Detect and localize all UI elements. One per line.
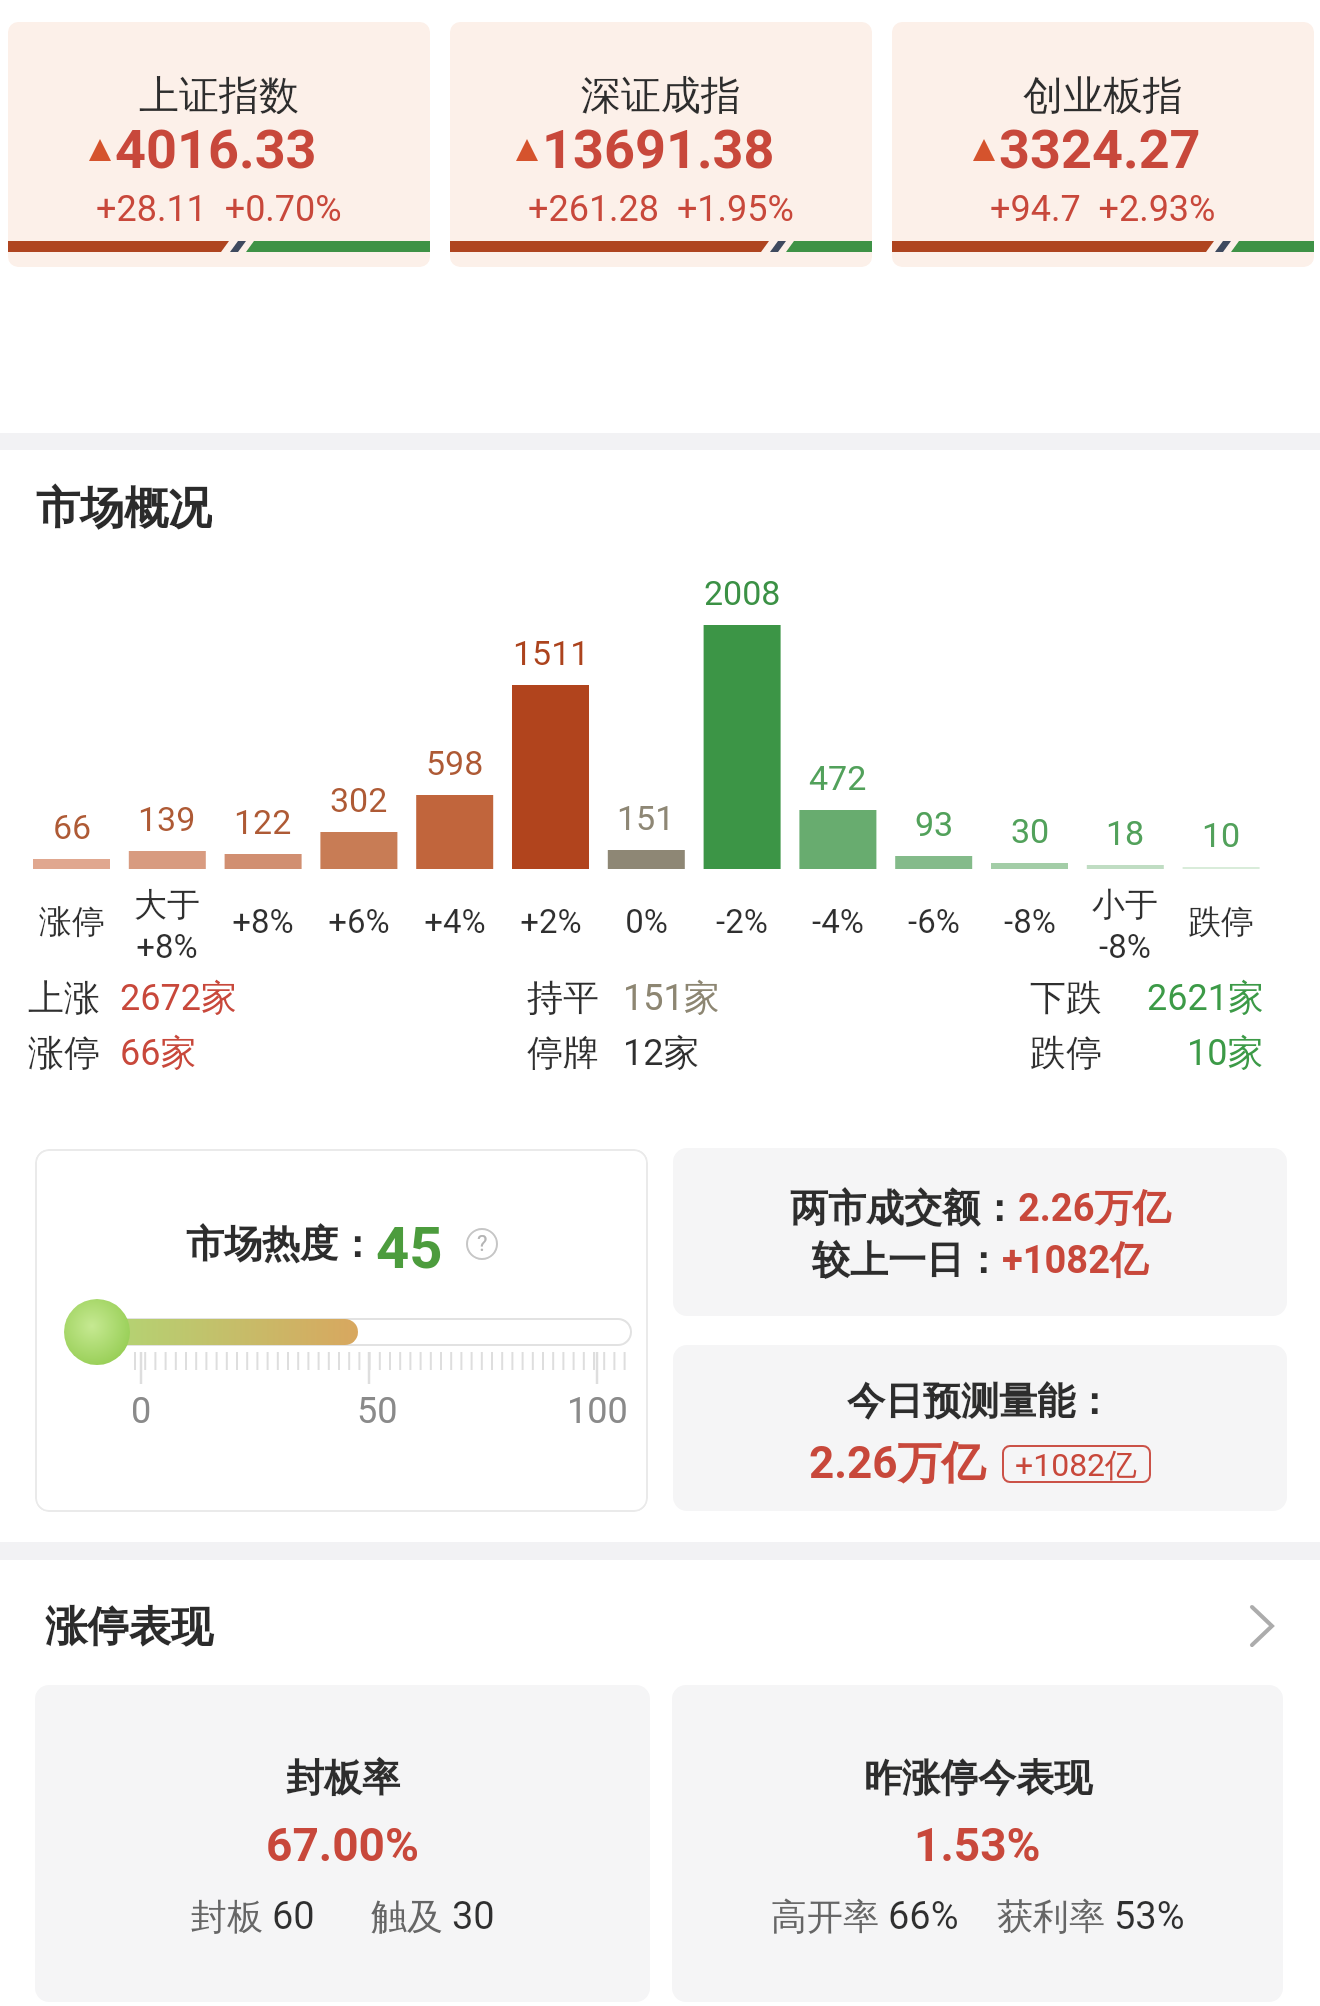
staticText: 12家: [623, 1030, 700, 1070]
staticText: 93: [915, 804, 954, 844]
staticText: 1.53%: [914, 1818, 1041, 1872]
staticText: 小于 -8%: [1092, 884, 1158, 966]
staticText: 53%: [1114, 1894, 1185, 1939]
staticText: 两市成交额：: [790, 1184, 1018, 1232]
button[interactable]: [35, 1149, 648, 1512]
staticText: 30: [452, 1894, 495, 1939]
staticText: 122: [234, 802, 292, 842]
staticText: +94.7 +2.93%: [990, 188, 1216, 230]
button[interactable]: 涨停表现: [35, 1598, 1285, 1656]
button[interactable]: [673, 1148, 1287, 1316]
staticText: 上涨: [28, 975, 100, 1015]
staticText: 67.00%: [266, 1818, 419, 1872]
button[interactable]: [35, 1685, 650, 2002]
staticText: 封板率: [286, 1754, 400, 1802]
staticText: 获利率: [997, 1894, 1114, 1939]
staticText: 市场热度：: [186, 1220, 376, 1268]
staticText: 151家: [623, 975, 720, 1015]
staticText: 涨停: [28, 1030, 100, 1070]
staticText: 较上一日：: [812, 1236, 1002, 1284]
staticText: 472: [809, 758, 867, 798]
staticText: 151: [617, 798, 675, 838]
staticText: 66%: [888, 1894, 959, 1939]
staticText: 0%: [625, 902, 668, 941]
staticText: 4016.33: [115, 118, 317, 181]
staticText: 13691.38: [542, 118, 775, 181]
staticText: 跌停: [1030, 1030, 1102, 1070]
staticText: 市场概况: [36, 481, 212, 531]
staticText: +6%: [328, 902, 390, 941]
staticText: 10: [1202, 815, 1241, 855]
staticText: 高开率: [771, 1894, 888, 1939]
staticText: 30: [1011, 811, 1050, 851]
staticText: +1082亿: [1015, 1445, 1138, 1483]
staticText: -8%: [1004, 902, 1056, 941]
staticText: 持平: [527, 975, 599, 1015]
button[interactable]: [450, 22, 872, 267]
button[interactable]: [673, 1345, 1287, 1511]
staticText: 2.26万亿: [809, 1436, 986, 1491]
staticText: 18: [1106, 813, 1145, 853]
staticText: 66家: [120, 1030, 197, 1070]
staticText: 2621家: [1147, 975, 1264, 1015]
staticText: +4%: [424, 902, 486, 941]
staticText: 封板: [191, 1894, 272, 1939]
staticText: 2008: [704, 573, 781, 613]
staticText: 上证指数: [139, 70, 299, 114]
staticText: 139: [138, 799, 196, 839]
button[interactable]: [672, 1685, 1283, 2002]
staticText: 深证成指: [581, 70, 741, 114]
staticText: 66: [53, 807, 92, 847]
staticText: 3324.27: [999, 118, 1201, 181]
staticText: 60: [272, 1894, 315, 1939]
staticText: +2%: [520, 902, 582, 941]
staticText: 0: [131, 1390, 152, 1430]
staticText: 今日预测量能：: [847, 1377, 1113, 1425]
staticText: 100: [567, 1390, 628, 1430]
staticText: -6%: [908, 902, 960, 941]
staticText: +8%: [232, 902, 294, 941]
staticText: 302: [330, 780, 388, 820]
staticText: 50: [357, 1390, 398, 1430]
staticText: +261.28 +1.95%: [528, 188, 794, 230]
staticText: +1082亿: [1002, 1236, 1148, 1284]
staticText: 触及: [371, 1894, 452, 1939]
staticText: 下跌: [1030, 975, 1102, 1015]
staticText: 45: [376, 1214, 443, 1274]
staticText: -2%: [716, 902, 768, 941]
staticText: 涨停: [39, 901, 105, 941]
staticText: 1511: [513, 633, 590, 673]
button[interactable]: [892, 22, 1314, 267]
staticText: +28.11 +0.70%: [96, 188, 342, 230]
staticText: 停牌: [527, 1030, 599, 1070]
staticText: 创业板指: [1023, 70, 1183, 114]
staticText: 598: [426, 743, 484, 783]
staticText: 涨停表现: [45, 1601, 213, 1654]
staticText: 昨涨停今表现: [864, 1754, 1092, 1802]
staticText: 2.26万亿: [1018, 1184, 1171, 1232]
button[interactable]: [8, 22, 430, 267]
staticText: 大于 +8%: [134, 884, 200, 966]
staticText: 跌停: [1188, 901, 1254, 941]
staticText: -4%: [812, 902, 864, 941]
staticText: 10家: [1187, 1030, 1264, 1070]
staticText: 2672家: [120, 975, 237, 1015]
staticText: ?: [477, 1231, 488, 1257]
